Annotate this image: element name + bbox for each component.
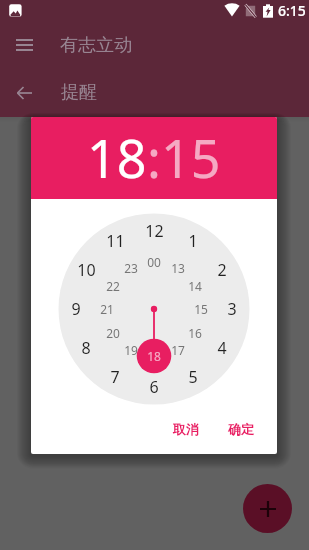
staticText: 2 (217, 259, 227, 281)
staticText: 6 (149, 376, 159, 398)
staticText: 14 (188, 278, 202, 294)
staticText: 确定 (228, 421, 254, 437)
staticText: 9 (71, 298, 81, 320)
staticText: 3 (227, 298, 237, 320)
staticText: 16 (188, 325, 202, 341)
staticText: 有志立动 (60, 34, 132, 57)
staticText: 21 (100, 301, 114, 317)
staticText: 23 (124, 260, 138, 276)
staticText: 取消 (173, 421, 199, 437)
button[interactable]: 确定 (220, 415, 262, 443)
staticText: 13 (171, 260, 185, 276)
staticText: 4 (217, 337, 227, 359)
staticText: 18 (147, 348, 161, 364)
button[interactable]: 18 (87, 122, 147, 193)
staticText: 15 (194, 301, 208, 317)
staticText: 5 (188, 366, 198, 388)
staticText: 8 (81, 337, 91, 359)
staticText: 7 (110, 366, 120, 388)
staticText: 1 (188, 230, 198, 252)
staticText: 00 (147, 254, 161, 270)
staticText: 6:15 (278, 1, 306, 20)
staticText: : (147, 122, 161, 193)
button[interactable]: Menu (7, 27, 41, 61)
staticText: 22 (106, 278, 120, 294)
button[interactable]: Back (7, 76, 41, 110)
staticText: 19 (124, 342, 138, 358)
staticText: 12 (145, 220, 164, 242)
staticText: 10 (77, 259, 96, 281)
staticText: 11 (106, 230, 125, 252)
button[interactable]: 15 (161, 122, 221, 193)
staticText: 17 (171, 342, 185, 358)
staticText: 20 (106, 325, 120, 341)
button[interactable]: Add (243, 484, 292, 533)
staticText: 提醒 (61, 81, 97, 104)
button[interactable]: 取消 (165, 415, 207, 443)
